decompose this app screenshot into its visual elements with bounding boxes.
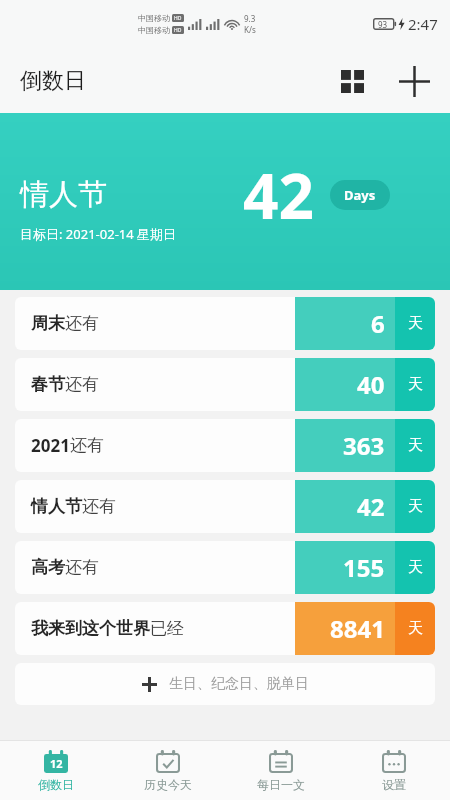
button[interactable]: 每日一文: [224, 741, 337, 800]
staticText: HD: [174, 27, 182, 34]
staticText: 8841: [330, 612, 385, 645]
staticText: 倒数日: [38, 777, 74, 792]
button[interactable]: 春节: [15, 358, 435, 411]
staticText: 天: [408, 436, 423, 455]
button[interactable]: Grid view: [328, 57, 376, 105]
staticText: 周末: [31, 313, 65, 334]
staticText: 倒数日: [20, 67, 86, 95]
staticText: 2021: [31, 434, 70, 457]
button[interactable]: 生日、纪念日、脱单日: [15, 663, 435, 705]
staticText: 情人节: [31, 496, 82, 517]
button[interactable]: Add countdown: [390, 57, 438, 105]
staticText: 目标日: 2021-02-14 星期日: [20, 225, 177, 243]
staticText: 天: [408, 497, 423, 516]
button[interactable]: 2021: [15, 419, 435, 472]
staticText: 我来到这个世界: [31, 618, 150, 639]
staticText: 天: [408, 558, 423, 577]
staticText: 天: [408, 314, 423, 333]
staticText: 6: [371, 307, 385, 340]
staticText: 中国移动: [138, 25, 170, 35]
button[interactable]: 情人节: [0, 113, 450, 290]
button[interactable]: 我来到这个世界: [15, 602, 435, 655]
button[interactable]: 高考: [15, 541, 435, 594]
staticText: 设置: [382, 777, 406, 792]
staticText: 42: [243, 153, 314, 237]
staticText: 还有: [65, 557, 99, 578]
button[interactable]: 设置: [337, 741, 450, 800]
staticText: 历史今天: [144, 777, 192, 792]
button[interactable]: 情人节: [15, 480, 435, 533]
staticText: 2:47: [408, 14, 438, 34]
staticText: 155: [343, 551, 385, 584]
staticText: 还有: [65, 374, 99, 395]
staticText: 9.3: [244, 13, 256, 24]
staticText: 中国移动: [138, 13, 170, 23]
staticText: 还有: [70, 435, 104, 456]
staticText: 春节: [31, 374, 65, 395]
staticText: 情人节: [20, 176, 107, 213]
staticText: 42: [357, 490, 385, 523]
staticText: 40: [357, 368, 385, 401]
staticText: HD: [174, 15, 182, 22]
staticText: 还有: [65, 313, 99, 334]
staticText: 93: [378, 19, 388, 30]
button[interactable]: 历史今天: [112, 741, 224, 800]
staticText: 363: [343, 429, 385, 462]
staticText: K/s: [244, 24, 256, 35]
button[interactable]: 周末: [15, 297, 435, 350]
staticText: 高考: [31, 557, 65, 578]
staticText: 12: [50, 756, 63, 771]
staticText: 还有: [82, 496, 116, 517]
staticText: 天: [408, 619, 423, 638]
staticText: 天: [408, 375, 423, 394]
staticText: 已经: [150, 618, 184, 639]
staticText: Days: [344, 186, 376, 204]
staticText: 每日一文: [257, 777, 305, 792]
button[interactable]: 12: [0, 741, 112, 800]
staticText: 生日、纪念日、脱单日: [169, 675, 309, 693]
